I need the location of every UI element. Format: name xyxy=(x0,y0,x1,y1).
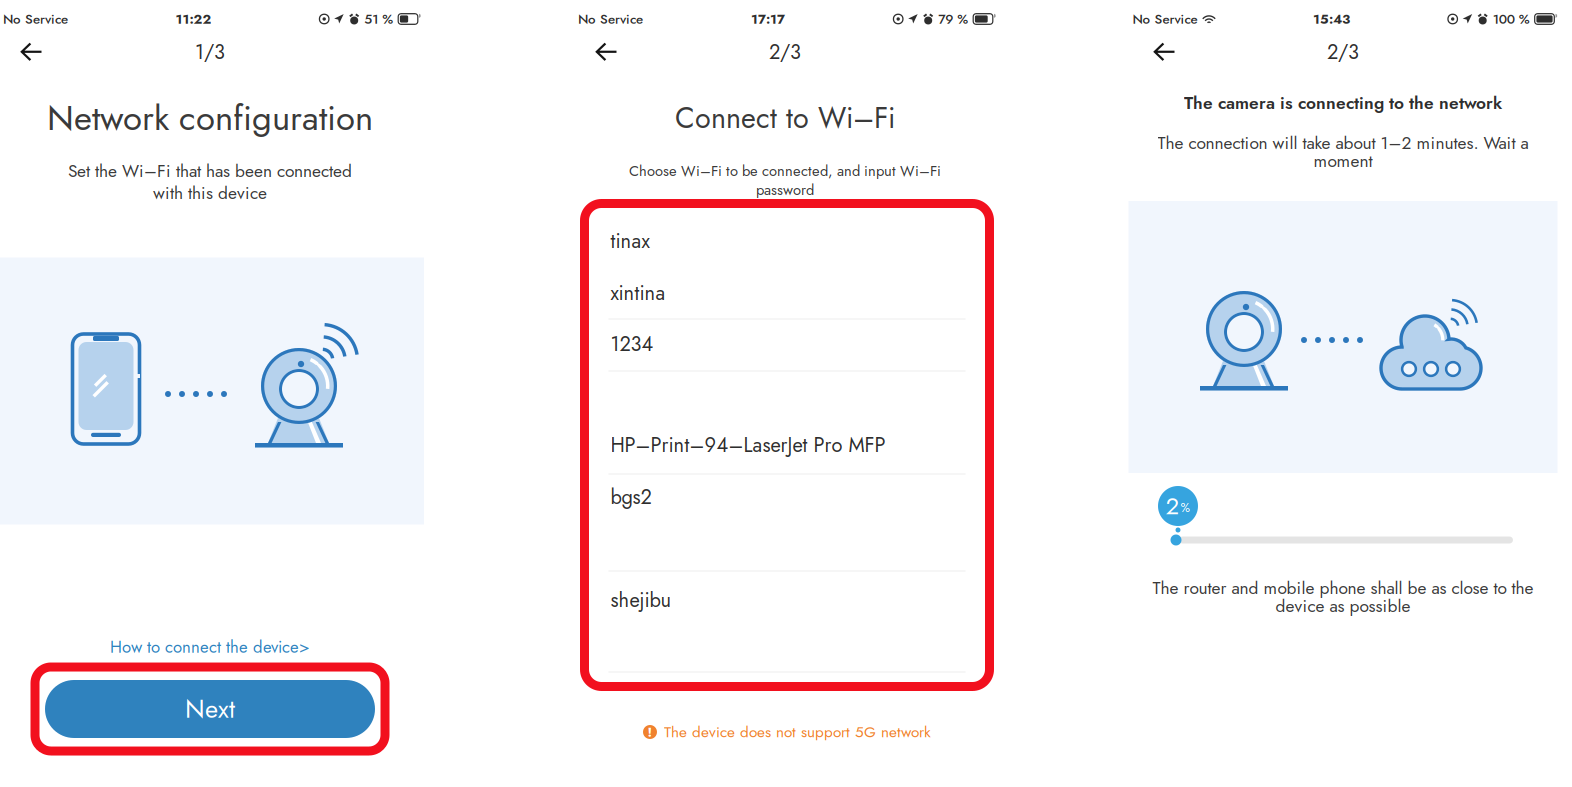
staticText: password xyxy=(756,179,814,201)
staticText: 51 % xyxy=(364,9,393,29)
staticText: tinax xyxy=(610,226,649,255)
staticText: % xyxy=(1180,498,1190,517)
staticText: 17:17 xyxy=(751,9,785,29)
button[interactable]: HP–Print–94–LaserJet Pro MFP xyxy=(584,371,989,474)
staticText: 1/3 xyxy=(195,37,225,66)
staticText: 15:43 xyxy=(1313,9,1350,29)
button[interactable]: Back xyxy=(1141,34,1187,69)
staticText: HP–Print–94–LaserJet Pro MFP xyxy=(610,430,885,459)
button[interactable]: tinax xyxy=(584,203,989,268)
staticText: 2/3 xyxy=(1327,37,1359,66)
staticText: ! xyxy=(647,722,652,742)
staticText: Connect to Wi–Fi xyxy=(675,97,895,139)
staticText: 1234 xyxy=(610,329,653,358)
staticText: with this device xyxy=(153,180,267,205)
button[interactable]: shejibu xyxy=(584,571,989,672)
staticText: 2 xyxy=(1165,489,1179,523)
button[interactable]: Back xyxy=(8,34,54,69)
staticText: 2/3 xyxy=(769,37,801,66)
staticText: The router and mobile phone shall be as … xyxy=(1152,575,1533,600)
staticText: bgs2 xyxy=(610,482,651,511)
staticText: The camera is connecting to the network xyxy=(1184,90,1502,115)
button[interactable]: How to connect the device> xyxy=(102,629,318,665)
staticText: How to connect the device> xyxy=(110,635,310,659)
button[interactable]: 1234 xyxy=(584,319,989,371)
button[interactable]: bgs2 xyxy=(584,474,989,571)
staticText: No Service xyxy=(578,9,643,29)
staticText: Choose Wi–Fi to be connected, and input … xyxy=(629,160,941,182)
button[interactable]: xintina xyxy=(584,268,989,319)
staticText: Next xyxy=(185,691,235,727)
staticText: 11:22 xyxy=(176,9,212,29)
button[interactable]: Back xyxy=(583,34,629,69)
staticText: Network configuration xyxy=(47,93,373,143)
staticText: shejibu xyxy=(610,585,671,614)
staticText: xintina xyxy=(610,278,665,307)
staticText: 79 % xyxy=(938,9,968,29)
button[interactable]: Next xyxy=(35,667,385,751)
staticText: moment xyxy=(1313,148,1372,173)
staticText: No Service xyxy=(1132,9,1197,29)
staticText: No Service xyxy=(3,9,68,29)
staticText: Set the Wi–Fi that has been connected xyxy=(68,158,352,183)
staticText: The device does not support 5G network xyxy=(664,721,931,743)
staticText: device as possible xyxy=(1275,593,1410,618)
staticText: The connection will take about 1–2 minut… xyxy=(1157,130,1528,155)
staticText: 100 % xyxy=(1493,9,1530,29)
